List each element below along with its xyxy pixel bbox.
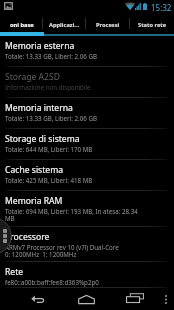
staticText: ARMv7 Processor rev 10 (v7l) Dual-Core 0… <box>5 243 119 259</box>
button[interactable]: Cache sistema <box>0 160 174 191</box>
button[interactable]: Applicazi... <box>43 15 86 32</box>
button[interactable]: Stato rete <box>130 15 174 32</box>
button[interactable]: Storage A2SD <box>0 67 174 98</box>
staticText: fe80::a00b:baff:fee8:d363%p2p0 <box>5 278 99 286</box>
staticText: Informazione non disponibile <box>5 83 91 91</box>
staticText: Memoria interna <box>5 102 73 114</box>
staticText: Cache sistema <box>5 164 64 176</box>
staticText: Storage A2SD <box>5 71 60 83</box>
staticText: Storage di sistema <box>5 133 80 145</box>
staticText: Totale: 694 MB, Liberi: 193 MB, In atesa… <box>5 207 138 223</box>
staticText: Totale: 425 MB, Liberi: 418 MB <box>5 176 93 184</box>
staticText: 15:32 <box>151 2 172 13</box>
button[interactable]: Memoria esterna <box>0 36 174 67</box>
staticText: Totale: 13.33 GB, Liberi: 2.06 GB <box>5 52 97 60</box>
button[interactable]: Processi <box>86 15 130 32</box>
staticText: Rete <box>5 266 24 278</box>
button[interactable]: Processore <box>0 227 174 262</box>
button[interactable]: Home <box>75 292 97 306</box>
button[interactable]: Memoria interna <box>0 98 174 129</box>
staticText: Processi <box>96 21 120 29</box>
button[interactable]: Recent apps <box>124 291 146 305</box>
staticText: Applicazi... <box>49 21 80 29</box>
button[interactable]: Back <box>27 292 48 306</box>
button[interactable]: Memoria RAM <box>0 191 174 227</box>
staticText: Totale: 13.33 GB, Liberi: 2.06 GB <box>5 114 97 122</box>
staticText: Stato rete <box>138 21 167 29</box>
staticText: oni base <box>10 21 34 29</box>
button[interactable]: oni base <box>0 15 43 32</box>
staticText: Memoria esterna <box>5 40 75 52</box>
button[interactable]: Rete <box>0 262 174 288</box>
button[interactable]: Storage di sistema <box>0 129 174 160</box>
staticText: Processore <box>5 231 50 243</box>
staticText: Totale: 644 MB, Liberi: 170 MB <box>5 145 93 153</box>
button[interactable]: More options <box>158 288 174 310</box>
staticText: Memoria RAM <box>5 195 63 207</box>
